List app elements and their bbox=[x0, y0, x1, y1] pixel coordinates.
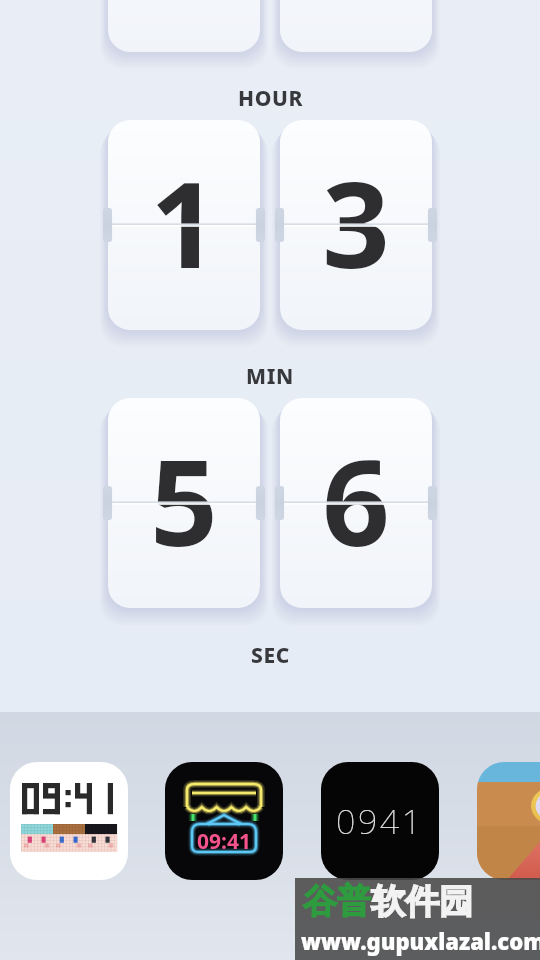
staticText: 09:41 bbox=[197, 827, 251, 856]
staticText: www.gupuxlazal.com bbox=[301, 926, 540, 956]
button[interactable]: 8 bbox=[280, 0, 432, 52]
button[interactable]: Minimal thin clock app bbox=[321, 762, 439, 880]
button[interactable]: 5 bbox=[108, 398, 260, 608]
button[interactable]: 3 bbox=[280, 120, 432, 330]
button[interactable]: 6 bbox=[280, 398, 432, 608]
button[interactable]: Pixel clock widget app bbox=[10, 762, 128, 880]
staticText: 1 bbox=[150, 142, 218, 303]
staticText: 0941 bbox=[336, 798, 424, 844]
button[interactable]: Neon shop clock app bbox=[165, 762, 283, 880]
staticText: HOUR bbox=[238, 84, 303, 113]
staticText: 谷普 bbox=[303, 880, 371, 923]
staticText: 3 bbox=[322, 142, 390, 303]
staticText: 6 bbox=[322, 420, 390, 581]
staticText: 12 bbox=[539, 794, 540, 806]
button[interactable]: 1 bbox=[108, 120, 260, 330]
staticText: MIN bbox=[246, 362, 294, 391]
button[interactable]: 4 bbox=[108, 0, 260, 52]
button[interactable]: Melting clock app bbox=[477, 762, 540, 880]
staticText: 5 bbox=[150, 420, 218, 581]
staticText: SEC bbox=[251, 641, 290, 670]
staticText: 软件园 bbox=[371, 880, 473, 923]
